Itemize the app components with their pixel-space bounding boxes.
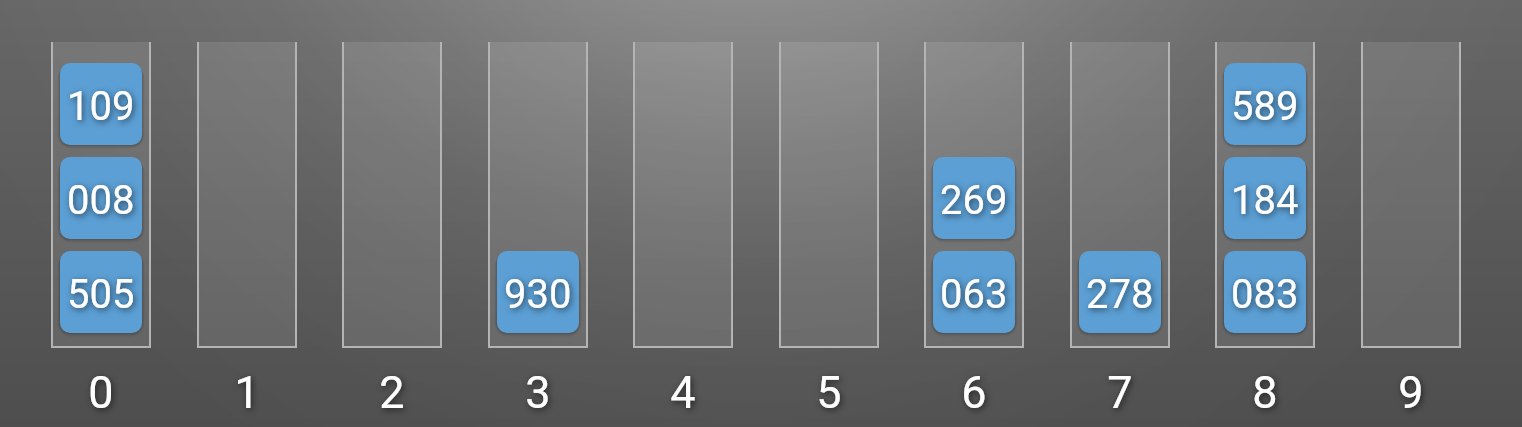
button[interactable] <box>1215 42 1315 348</box>
staticText: 0 <box>51 366 151 419</box>
staticText: 6 <box>924 366 1024 419</box>
button[interactable] <box>197 42 297 348</box>
staticText: 1 <box>197 366 297 419</box>
button[interactable] <box>779 42 879 348</box>
staticText: 9 <box>1361 366 1461 419</box>
staticText: 7 <box>1070 366 1170 419</box>
button[interactable] <box>924 42 1024 348</box>
staticText: 083 <box>1231 271 1299 318</box>
button[interactable]: 083 <box>1224 251 1306 333</box>
button[interactable]: 184 <box>1224 157 1306 239</box>
staticText: 3 <box>488 366 588 419</box>
button[interactable] <box>51 42 151 348</box>
button[interactable] <box>633 42 733 348</box>
staticText: 589 <box>1231 83 1299 130</box>
button[interactable]: 278 <box>1079 251 1161 333</box>
staticText: 008 <box>67 177 135 224</box>
staticText: 505 <box>67 271 135 318</box>
staticText: 4 <box>633 366 733 419</box>
staticText: 5 <box>779 366 879 419</box>
staticText: 2 <box>342 366 442 419</box>
button[interactable] <box>1361 42 1461 348</box>
staticText: 063 <box>940 271 1008 318</box>
staticText: 8 <box>1215 366 1315 419</box>
button[interactable]: 589 <box>1224 63 1306 145</box>
staticText: 930 <box>504 271 572 318</box>
button[interactable] <box>488 42 588 348</box>
staticText: 278 <box>1086 271 1154 318</box>
staticText: 109 <box>67 83 135 130</box>
button[interactable] <box>342 42 442 348</box>
button[interactable]: 008 <box>60 157 142 239</box>
button[interactable]: 269 <box>933 157 1015 239</box>
staticText: 269 <box>940 177 1008 224</box>
button[interactable]: 063 <box>933 251 1015 333</box>
button[interactable]: 109 <box>60 63 142 145</box>
button[interactable]: 930 <box>497 251 579 333</box>
staticText: 184 <box>1231 177 1299 224</box>
button[interactable]: 505 <box>60 251 142 333</box>
button[interactable] <box>1070 42 1170 348</box>
